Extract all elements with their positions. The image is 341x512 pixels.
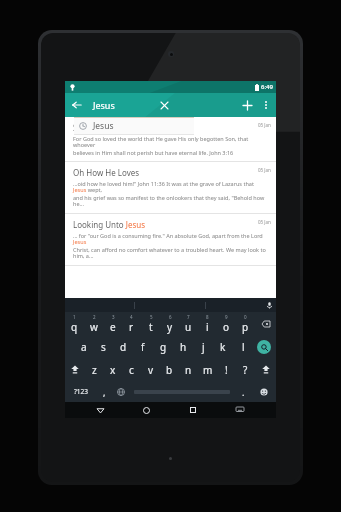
staticText: u (185, 320, 192, 334)
button[interactable]: 6 (160, 312, 179, 335)
button[interactable]: . (234, 381, 252, 402)
button[interactable]: g (153, 335, 173, 358)
button[interactable]: More options (258, 97, 274, 113)
button[interactable]: 9 (217, 312, 236, 335)
staticText: z (92, 363, 97, 377)
staticText: v (148, 363, 154, 377)
staticText: 0 (244, 314, 247, 320)
button[interactable]: Emoji (252, 381, 276, 402)
button[interactable]: Back (92, 402, 108, 418)
staticText: S (73, 122, 78, 133)
button[interactable]: Recent apps (185, 402, 201, 418)
staticText: w (90, 320, 98, 334)
staticText: 4 (130, 314, 133, 320)
button[interactable]: Space (130, 381, 234, 402)
button[interactable]: l (233, 335, 253, 358)
button[interactable]: 2 (84, 312, 103, 335)
staticText: t (149, 320, 153, 334)
staticText: and his grief was so manifest to the onl… (73, 194, 268, 208)
staticText: Christ, can afford no comfort whatever t… (73, 246, 268, 260)
staticText: k (220, 340, 226, 354)
staticText: o (223, 320, 230, 334)
button[interactable]: a (74, 335, 93, 358)
staticText: l (242, 340, 245, 354)
button[interactable]: f (133, 335, 153, 358)
button[interactable]: Backspace (255, 312, 276, 335)
staticText: 5 (150, 314, 153, 320)
button[interactable]: Oh How He Loves (65, 162, 276, 213)
button[interactable]: d (113, 335, 133, 358)
staticText: 1 (73, 314, 76, 320)
staticText: Jesus (93, 120, 114, 132)
button[interactable]: c (122, 358, 141, 381)
button[interactable]: j (193, 335, 213, 358)
staticText: , (103, 386, 106, 398)
button[interactable]: h (173, 335, 193, 358)
staticText: ...oid how he loved him!" John 11:36 It … (73, 180, 268, 194)
staticText: 6 (169, 314, 172, 320)
button[interactable]: S (65, 117, 276, 161)
button[interactable]: x (103, 358, 122, 381)
button[interactable]: Add (236, 94, 258, 116)
staticText: c (129, 363, 134, 377)
staticText: ... for "our God is a consuming fire." A… (73, 232, 268, 246)
staticText: 7 (187, 314, 190, 320)
staticText: Jesus (93, 99, 115, 111)
staticText: ? (243, 363, 248, 377)
staticText: 3 (112, 314, 115, 320)
staticText: m (203, 363, 213, 377)
staticText: 8 (206, 314, 209, 320)
button[interactable]: 0 (236, 312, 255, 335)
button[interactable]: k (213, 335, 233, 358)
staticText: Oh How He Loves (73, 167, 140, 178)
staticText: 05 Jan (258, 167, 271, 173)
button[interactable]: ? (236, 358, 255, 381)
staticText: ?123 (74, 387, 88, 396)
staticText: f (141, 340, 145, 354)
staticText: Looking Unto Jesus (73, 219, 146, 230)
button[interactable]: Shift (65, 358, 85, 381)
button[interactable]: z (85, 358, 103, 381)
button[interactable]: 3 (103, 312, 122, 335)
button[interactable]: Looking Unto Jesus (65, 214, 276, 265)
button[interactable]: b (160, 358, 179, 381)
staticText: p (242, 320, 249, 334)
button[interactable]: , (96, 381, 112, 402)
button[interactable]: 5 (141, 312, 160, 335)
staticText: d (120, 340, 127, 354)
staticText: e (110, 320, 116, 334)
button[interactable]: s (93, 335, 113, 358)
staticText: 05 Jan (258, 219, 271, 225)
staticText: a (81, 340, 87, 354)
staticText: r (129, 320, 134, 334)
button[interactable]: Change language (112, 381, 130, 402)
button[interactable]: Shift (255, 358, 276, 381)
staticText: . (242, 386, 245, 398)
staticText: j (202, 340, 205, 354)
button[interactable]: ! (217, 358, 236, 381)
button[interactable]: 8 (198, 312, 217, 335)
button[interactable]: Jesus (74, 117, 194, 135)
button[interactable]: Home (138, 402, 154, 418)
staticText: n (185, 363, 192, 377)
button[interactable]: m (198, 358, 217, 381)
staticText: s (101, 340, 106, 354)
button[interactable]: v (141, 358, 160, 381)
button[interactable]: Back (65, 93, 89, 117)
button[interactable]: n (179, 358, 198, 381)
staticText: ! (225, 363, 228, 377)
button[interactable]: Search (253, 335, 275, 358)
button[interactable]: 7 (179, 312, 198, 335)
button[interactable]: Voice input (262, 298, 276, 312)
button[interactable]: ?123 (65, 381, 96, 402)
button[interactable]: 4 (122, 312, 141, 335)
button[interactable]: Hide keyboard (232, 402, 248, 418)
button[interactable]: Clear search (152, 93, 176, 117)
staticText: y (167, 320, 173, 334)
staticText: b (166, 363, 173, 377)
button[interactable]: 1 (65, 312, 84, 335)
staticText: 9 (225, 314, 228, 320)
staticText: i (206, 320, 209, 334)
staticText: 05 Jan (258, 122, 271, 128)
staticText: 6:49 (261, 83, 273, 91)
